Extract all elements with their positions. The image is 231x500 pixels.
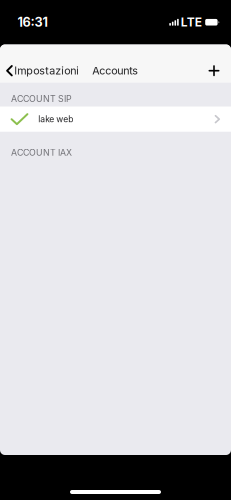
button[interactable]: Add account — [196, 59, 231, 83]
staticText: LTE — [181, 15, 202, 29]
staticText: Accounts — [92, 64, 138, 77]
staticText: ACCOUNT SIP — [11, 93, 72, 104]
button[interactable]: Impostazioni — [0, 59, 84, 83]
staticText: lake web — [38, 114, 73, 124]
button[interactable]: lake web — [0, 106, 231, 132]
staticText: ACCOUNT IAX — [11, 147, 72, 158]
staticText: 16:31 — [17, 15, 47, 30]
staticText: Impostazioni — [14, 64, 79, 77]
button[interactable]: Accounts — [84, 59, 138, 83]
